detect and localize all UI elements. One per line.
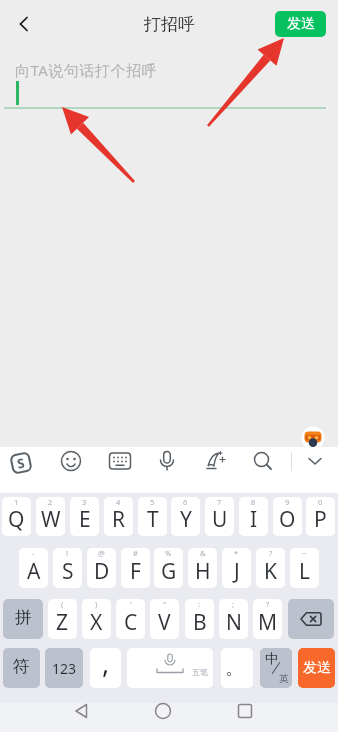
- staticText: 2: [48, 497, 53, 507]
- button[interactable]: (: [48, 599, 77, 639]
- button[interactable]: [251, 449, 275, 473]
- staticText: 五笔: [192, 667, 208, 677]
- button[interactable]: 9: [273, 497, 302, 536]
- button[interactable]: 0: [306, 497, 335, 536]
- staticText: ,: [102, 648, 110, 681]
- staticText: 符: [13, 656, 30, 677]
- button[interactable]: 3: [70, 497, 99, 536]
- button[interactable]: &: [188, 548, 217, 588]
- button[interactable]: 7: [205, 497, 234, 536]
- staticText: ': [130, 599, 132, 609]
- button[interactable]: -: [19, 548, 48, 588]
- staticText: I: [250, 505, 258, 534]
- staticText: 。: [225, 656, 244, 680]
- button[interactable]: ": [150, 599, 179, 639]
- button[interactable]: ,: [90, 648, 121, 688]
- button[interactable]: [59, 449, 83, 473]
- staticText: S: [15, 453, 27, 473]
- staticText: R: [112, 505, 126, 534]
- staticText: N: [226, 608, 242, 637]
- button[interactable]: 发送: [298, 648, 335, 688]
- button[interactable]: [108, 449, 132, 473]
- staticText: Q: [8, 505, 25, 534]
- button[interactable]: [301, 426, 325, 450]
- button[interactable]: :: [185, 599, 214, 639]
- button[interactable]: 123: [45, 648, 83, 688]
- staticText: ~: [302, 548, 307, 558]
- staticText: H: [195, 557, 211, 586]
- button[interactable]: [8, 8, 40, 40]
- staticText: V: [158, 608, 171, 637]
- button[interactable]: %: [154, 548, 183, 588]
- staticText: @: [98, 548, 105, 558]
- button[interactable]: [288, 599, 334, 639]
- staticText: L: [299, 557, 311, 586]
- staticText: 发送: [303, 659, 331, 677]
- staticText: 0: [318, 497, 323, 507]
- button[interactable]: 发送: [275, 11, 326, 37]
- staticText: M: [258, 608, 278, 637]
- button[interactable]: 。: [221, 648, 253, 688]
- button[interactable]: ): [82, 599, 111, 639]
- button[interactable]: [151, 699, 175, 723]
- staticText: 1: [14, 497, 19, 507]
- staticText: #: [133, 548, 138, 558]
- button[interactable]: 中: [260, 648, 292, 688]
- button[interactable]: 拼: [3, 599, 43, 639]
- staticText: !: [66, 548, 69, 558]
- staticText: ": [163, 599, 167, 609]
- button[interactable]: ;: [219, 599, 248, 639]
- button[interactable]: ?: [256, 548, 285, 588]
- staticText: 3: [82, 497, 87, 507]
- staticText: 英: [279, 673, 289, 685]
- button[interactable]: [70, 699, 94, 723]
- staticText: ?: [269, 548, 273, 558]
- staticText: X: [90, 608, 103, 637]
- button[interactable]: *: [222, 548, 251, 588]
- button[interactable]: 4: [104, 497, 133, 536]
- button[interactable]: [204, 449, 228, 473]
- button[interactable]: #: [121, 548, 150, 588]
- staticText: 9: [285, 497, 290, 507]
- button[interactable]: 五笔: [127, 648, 213, 688]
- button[interactable]: 5: [138, 497, 167, 536]
- staticText: F: [130, 557, 141, 586]
- staticText: 5: [150, 497, 155, 507]
- button[interactable]: @: [87, 548, 116, 588]
- staticText: 发送: [287, 15, 315, 33]
- staticText: 拼: [15, 607, 32, 628]
- staticText: (: [61, 599, 64, 609]
- staticText: *: [234, 548, 239, 558]
- button[interactable]: [155, 449, 179, 473]
- button[interactable]: 1: [2, 497, 31, 536]
- staticText: ;: [232, 599, 235, 609]
- button[interactable]: !: [53, 548, 82, 588]
- button[interactable]: S: [9, 451, 32, 474]
- button[interactable]: 2: [36, 497, 65, 536]
- staticText: T: [147, 505, 159, 534]
- button[interactable]: 6: [171, 497, 200, 536]
- staticText: -: [32, 548, 35, 558]
- staticText: P: [314, 505, 327, 534]
- staticText: K: [264, 557, 277, 586]
- staticText: %: [165, 548, 172, 558]
- button[interactable]: 8: [239, 497, 268, 536]
- staticText: ): [95, 599, 98, 609]
- staticText: 8: [251, 497, 256, 507]
- staticText: &: [200, 548, 206, 558]
- button[interactable]: ': [116, 599, 145, 639]
- staticText: U: [212, 505, 228, 534]
- staticText: :: [198, 599, 201, 609]
- staticText: 4: [116, 497, 121, 507]
- button[interactable]: 符: [3, 648, 40, 688]
- staticText: 向TA说句话打个招呼: [15, 60, 157, 80]
- button[interactable]: 向TA说句话打个招呼: [0, 48, 338, 128]
- staticText: 打招呼: [144, 14, 195, 35]
- button[interactable]: [233, 699, 257, 723]
- button[interactable]: ?: [253, 599, 282, 639]
- staticText: C: [124, 608, 138, 637]
- button[interactable]: [303, 449, 327, 473]
- button[interactable]: ~: [290, 548, 319, 588]
- staticText: B: [193, 608, 207, 637]
- staticText: 7: [217, 497, 222, 507]
